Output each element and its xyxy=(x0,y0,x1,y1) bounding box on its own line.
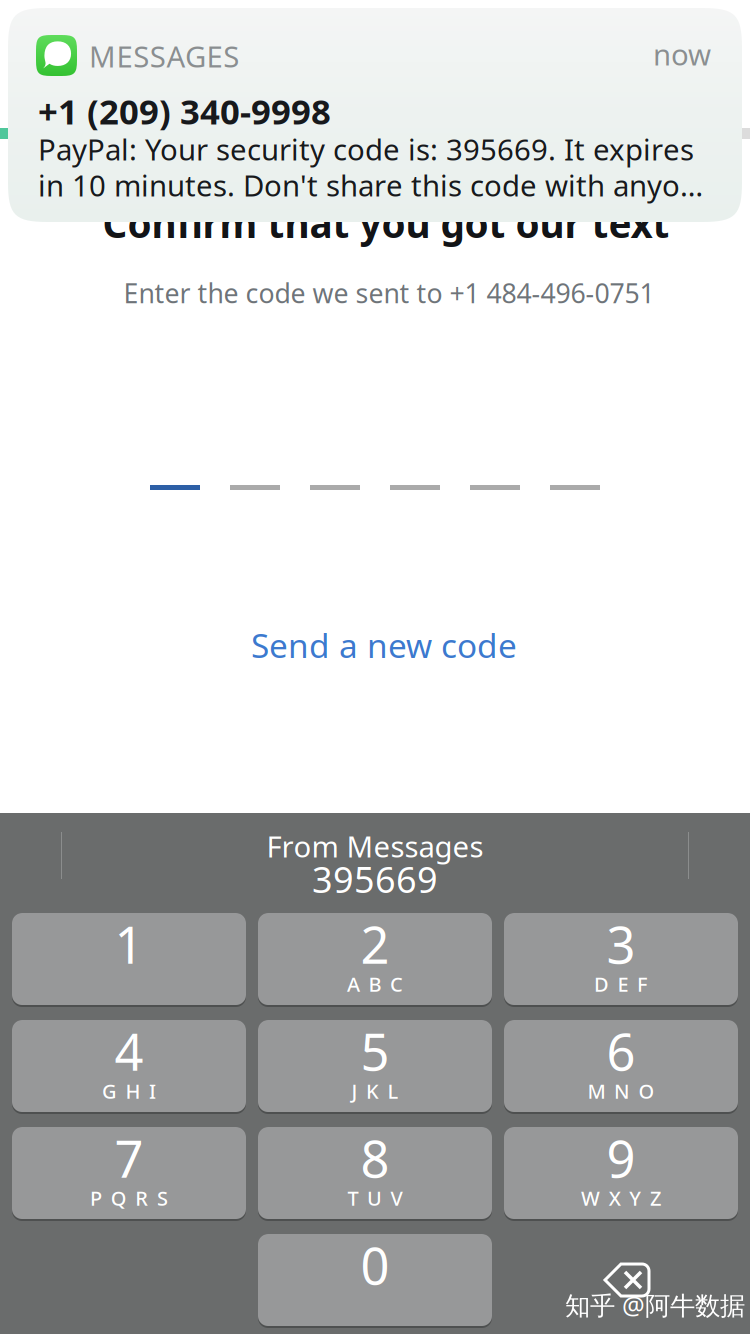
staticText: 知乎 @阿牛数据 xyxy=(565,1288,745,1322)
staticText: 5 xyxy=(360,1017,389,1085)
button[interactable]: 8 xyxy=(258,1127,492,1219)
staticText: PayPal: Your security code is: 395669. I… xyxy=(38,129,694,168)
staticText: 8 xyxy=(360,1124,389,1192)
button[interactable]: Delete xyxy=(504,1234,738,1326)
staticText: From Messages xyxy=(266,826,483,865)
staticText: in 10 minutes. Don't share this code wit… xyxy=(38,165,703,204)
staticText: M N O xyxy=(587,1078,655,1104)
button[interactable]: 5 xyxy=(258,1020,492,1112)
staticText: +1 (209) 340-9998 xyxy=(38,88,331,134)
staticText: 7 xyxy=(114,1124,143,1192)
staticText: W X Y Z xyxy=(581,1185,661,1211)
staticText: A B C xyxy=(347,971,403,997)
staticText: D E F xyxy=(594,971,648,997)
staticText: 1 xyxy=(114,910,143,978)
staticText: Send a new code xyxy=(251,623,517,667)
button[interactable]: 7 xyxy=(12,1127,246,1219)
staticText: 395669 xyxy=(312,855,438,903)
staticText: 4 xyxy=(114,1017,143,1085)
staticText: MESSAGES xyxy=(89,36,239,75)
button[interactable]: 6 xyxy=(504,1020,738,1112)
button[interactable]: 1 xyxy=(12,913,246,1005)
staticText: 2 xyxy=(360,910,389,978)
staticText: 0 xyxy=(360,1231,389,1299)
staticText: Confirm that you got our text xyxy=(102,197,669,249)
staticText: G H I xyxy=(102,1078,156,1104)
staticText: P Q R S xyxy=(90,1185,168,1211)
staticText: J K L xyxy=(351,1078,399,1104)
button[interactable]: 9 xyxy=(504,1127,738,1219)
staticText: now xyxy=(653,34,711,73)
staticText: 6 xyxy=(606,1017,635,1085)
button[interactable]: 2 xyxy=(258,913,492,1005)
button[interactable]: 0 xyxy=(258,1234,492,1326)
staticText: T U V xyxy=(347,1185,403,1211)
staticText: 9 xyxy=(606,1124,635,1192)
button[interactable]: Send a new code xyxy=(9,617,750,673)
button[interactable]: 3 xyxy=(504,913,738,1005)
staticText: 3 xyxy=(606,910,635,978)
staticText: Enter the code we sent to +1 484-496-075… xyxy=(123,275,654,311)
button[interactable]: 4 xyxy=(12,1020,246,1112)
